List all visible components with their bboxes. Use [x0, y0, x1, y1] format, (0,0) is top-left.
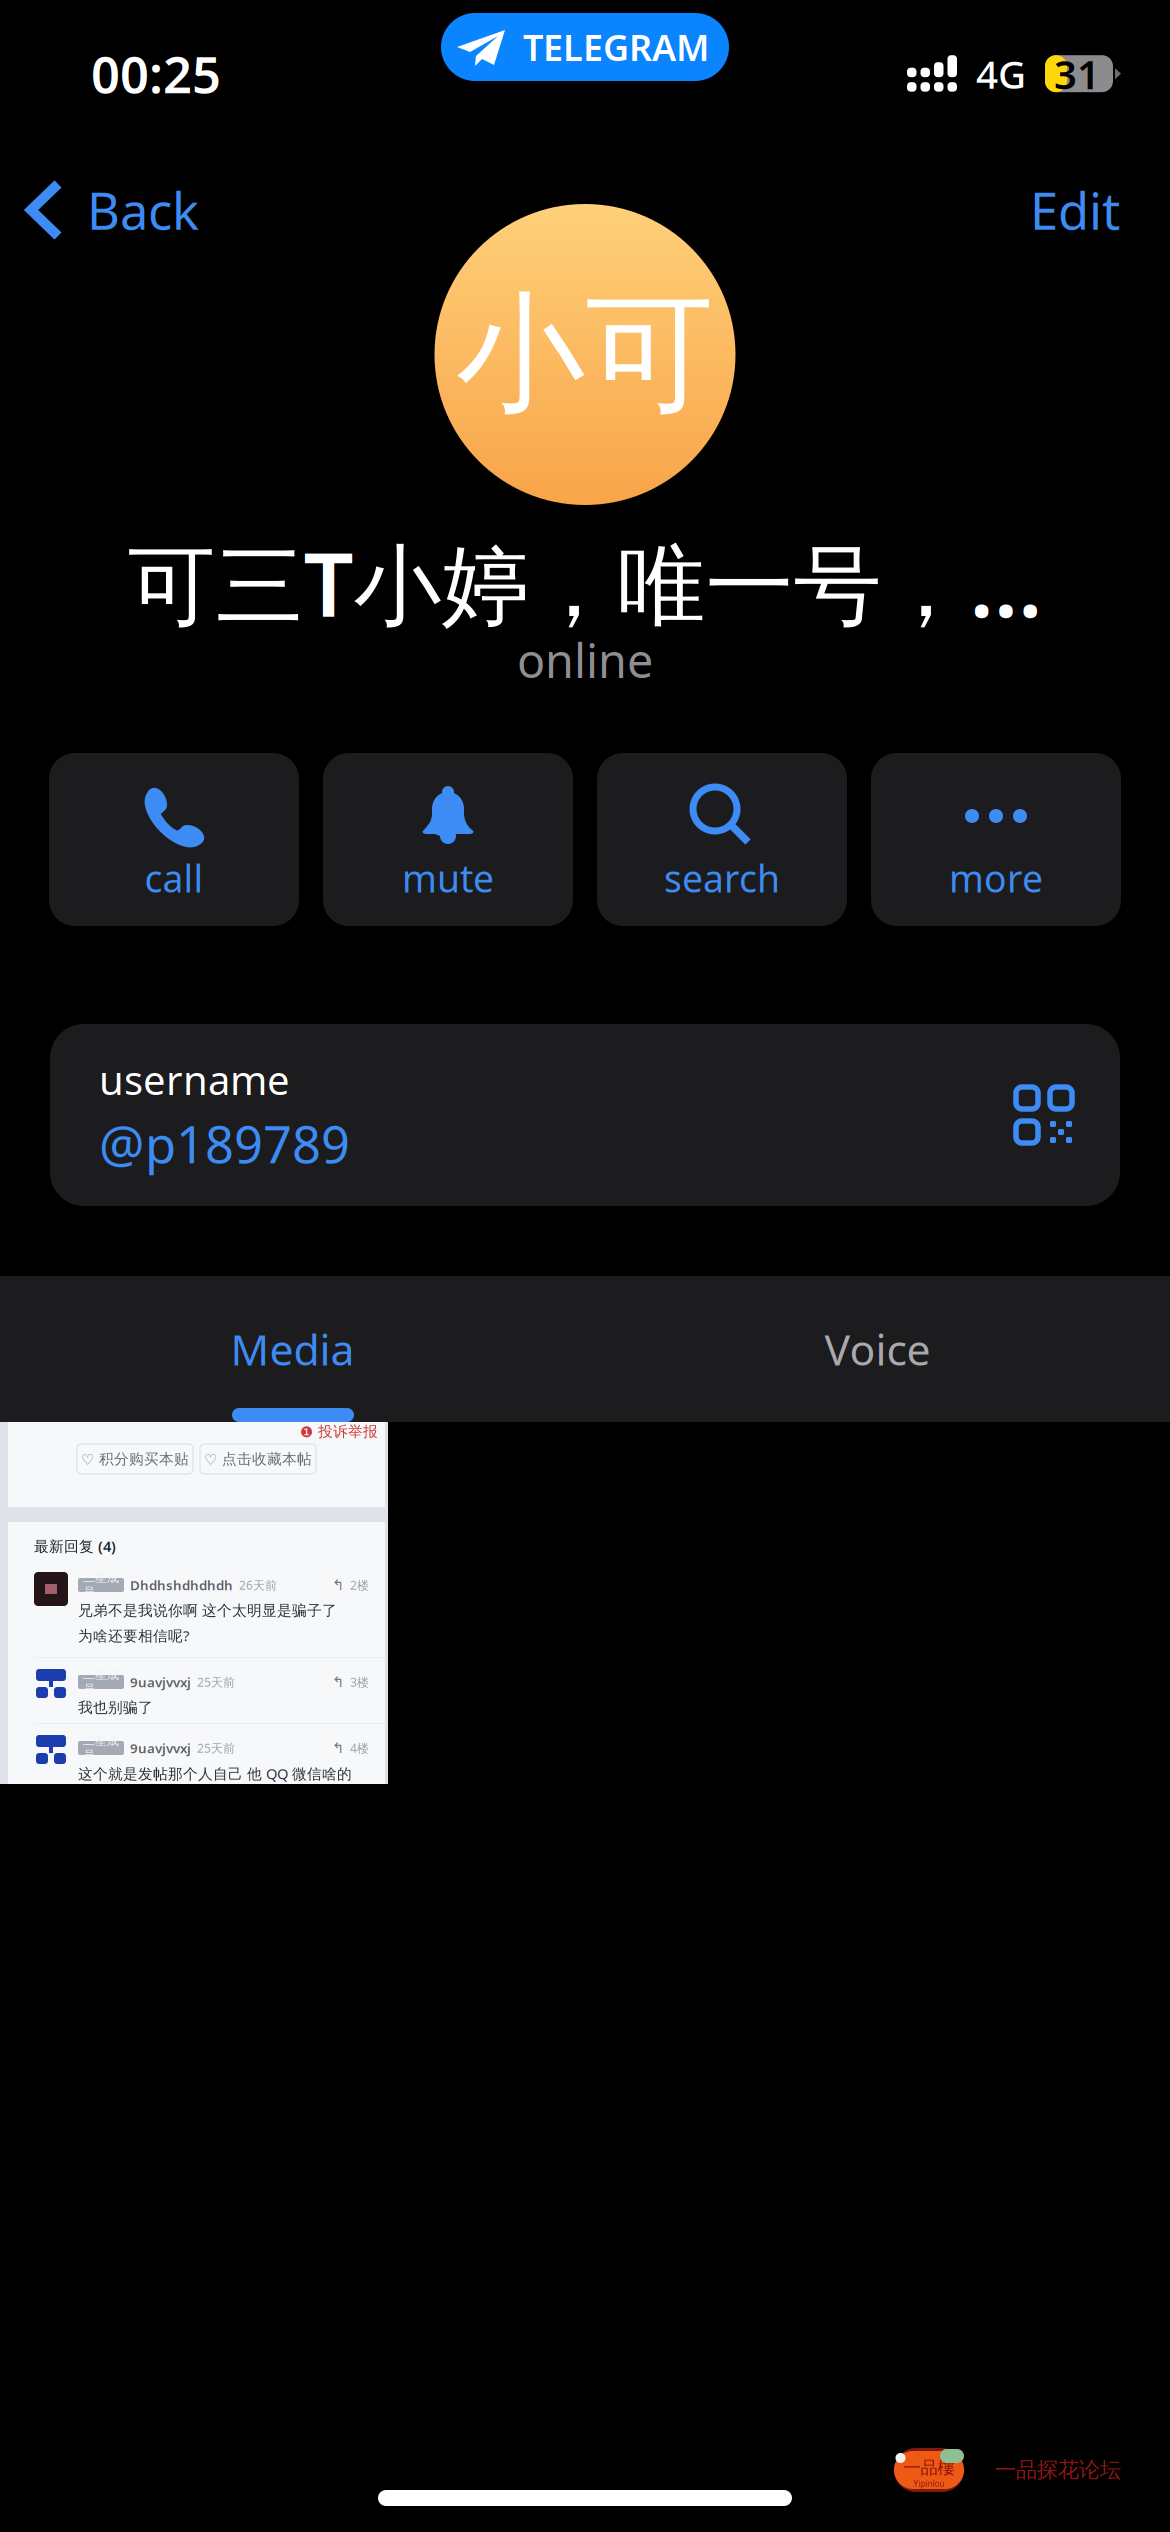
staticText: 31 [1054, 47, 1100, 100]
staticText: 这个就是发帖那个人自己 他 QQ 微信啥的 [78, 1764, 352, 1783]
staticText: 00:25 [91, 40, 221, 107]
staticText: Media [230, 1321, 354, 1377]
button[interactable]: username [50, 1024, 1120, 1206]
button[interactable]: Back [0, 168, 199, 252]
staticText: ↰ [332, 1740, 344, 1756]
staticText: Dhdhshdhdhdh [130, 1576, 233, 1594]
staticText: TELEGRAM [523, 23, 709, 71]
staticText: ♡ 积分购买本贴 [81, 1450, 189, 1468]
staticText: 3楼 [350, 1674, 369, 1690]
button[interactable]: Voice [585, 1276, 1170, 1422]
staticText: 小可 [456, 275, 714, 434]
staticText: ❶ 投诉举报 [300, 1422, 378, 1440]
staticText: search [664, 853, 780, 903]
button[interactable]: more [871, 753, 1121, 926]
staticText: ↰ [332, 1674, 344, 1690]
staticText: 25天前 [197, 1740, 235, 1756]
staticText: 二星成员 [83, 1733, 119, 1763]
staticText: 为啥还要相信呢? [78, 1626, 189, 1645]
staticText: ♡ 点击收藏本帖 [204, 1450, 312, 1468]
staticText: 一品樓 [903, 2457, 954, 2478]
staticText: online [517, 629, 653, 691]
staticText: Edit [1030, 176, 1120, 244]
button[interactable]: call [49, 753, 299, 926]
staticText: Voice [824, 1321, 930, 1377]
staticText: 二星成员 [83, 1570, 119, 1600]
staticText: ↰ [332, 1577, 344, 1593]
staticText: more [949, 853, 1043, 903]
staticText: Back [87, 176, 199, 244]
button[interactable]: Edit [1030, 168, 1170, 252]
staticText: username [99, 1053, 290, 1106]
staticText: 一品探花论坛 [995, 2457, 1121, 2483]
button[interactable]: ❶ 投诉举报 [0, 1422, 388, 1784]
staticText: 我也别骗了 [78, 1698, 153, 1716]
staticText: 最新回复 (4) [34, 1536, 116, 1556]
staticText: 4G [976, 48, 1026, 99]
staticText: @p189789 [99, 1110, 350, 1177]
staticText: Yipinlou [913, 2478, 944, 2489]
staticText: 二星成员 [83, 1667, 119, 1697]
staticText: mute [402, 853, 494, 903]
button[interactable]: search [597, 753, 847, 926]
staticText: 9uavjvvxj [130, 1673, 191, 1691]
staticText: 9uavjvvxj [130, 1739, 191, 1757]
staticText: call [144, 853, 203, 903]
staticText: 26天前 [239, 1577, 277, 1593]
staticText: 4楼 [350, 1740, 369, 1756]
staticText: 25天前 [197, 1674, 235, 1690]
staticText: 2楼 [350, 1577, 369, 1593]
button[interactable]: Media [0, 1276, 585, 1422]
staticText: 可三T小婷，唯一号，… [127, 525, 1042, 641]
staticText: 兄弟不是我说你啊 这个太明显是骗子了 [78, 1601, 337, 1619]
button[interactable]: mute [323, 753, 573, 926]
